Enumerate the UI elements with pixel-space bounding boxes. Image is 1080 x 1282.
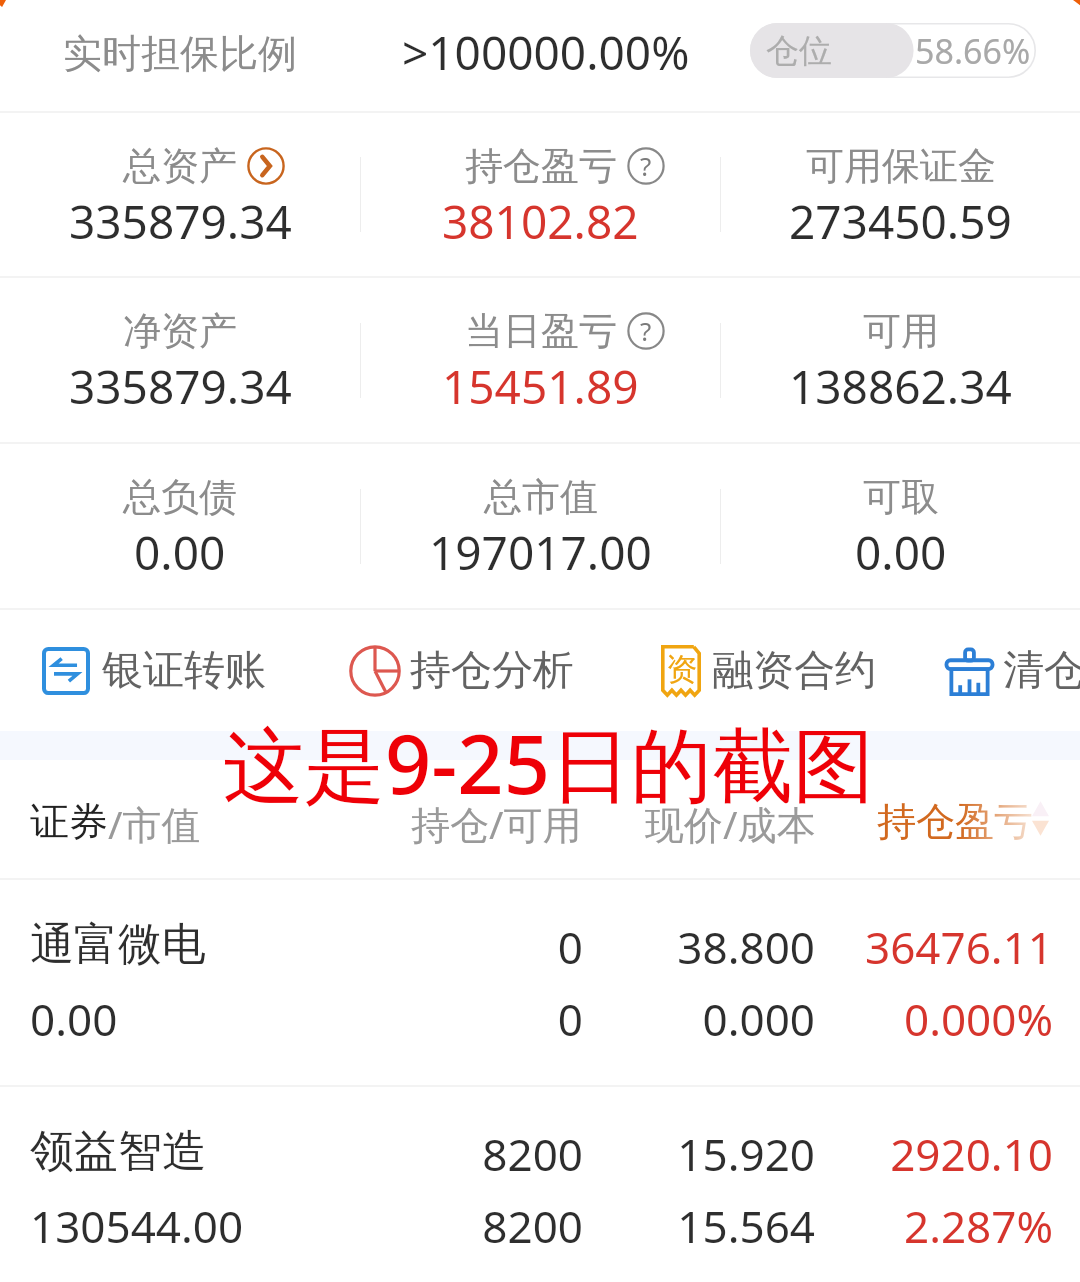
staticText: 335879.34: [69, 190, 292, 253]
staticText: 净资产: [123, 307, 237, 355]
staticText: 仓位: [766, 30, 832, 72]
staticText: 8200: [303, 1196, 583, 1256]
button[interactable]: 现价/成本: [645, 797, 816, 850]
staticText: 15.920: [595, 1124, 815, 1184]
staticText: 8200: [303, 1124, 583, 1184]
staticText: 2.287%: [828, 1196, 1053, 1256]
staticText: 持仓盈亏: [465, 142, 617, 190]
staticText: 0.00: [134, 521, 226, 584]
button[interactable]: 领益智造: [0, 1087, 1080, 1282]
staticText: 可用: [863, 307, 939, 355]
staticText: 通富微电: [30, 917, 206, 972]
staticText: 总负债: [123, 473, 237, 521]
staticText: 335879.34: [69, 355, 292, 418]
button[interactable]: 可用保证金: [721, 113, 1080, 276]
staticText: ?: [640, 148, 652, 183]
staticText: 资: [666, 650, 697, 689]
button[interactable]: 融资合约: [661, 645, 876, 697]
button[interactable]: 清仓: [945, 645, 1080, 697]
staticText: >100000.00%: [402, 21, 690, 84]
button[interactable]: 持仓分析: [349, 645, 574, 697]
button[interactable]: 总资产: [0, 113, 360, 276]
staticText: 58.66%: [915, 28, 1031, 74]
button[interactable]: 证券: [30, 797, 201, 850]
staticText: 36476.11: [828, 917, 1053, 977]
staticText: 130544.00: [30, 1196, 244, 1256]
button[interactable]: 总市值: [361, 444, 720, 608]
other: 总资产详情: [247, 147, 285, 185]
button[interactable]: 银证转账: [42, 645, 266, 697]
staticText: 实时担保比例: [63, 29, 297, 78]
staticText: 197017.00: [429, 521, 652, 584]
staticText: 273450.59: [789, 190, 1012, 253]
staticText: 38102.82: [442, 190, 639, 253]
button[interactable]: 仓位: [750, 23, 1036, 78]
other: 持仓分析: [349, 645, 401, 697]
button[interactable]: 净资产: [0, 278, 360, 442]
staticText: 0.000: [595, 989, 815, 1049]
staticText: 总市值: [484, 473, 598, 521]
staticText: 持仓分析: [410, 645, 574, 697]
staticText: 这是9-25日的截图: [223, 707, 874, 818]
staticText: 0: [303, 989, 583, 1049]
staticText: 38.800: [595, 917, 815, 977]
staticText: 15451.89: [442, 355, 639, 418]
staticText: 清仓: [1003, 645, 1080, 697]
button[interactable]: 持仓/可用: [411, 797, 582, 850]
staticText: ?: [640, 313, 652, 348]
staticText: 0.00: [855, 521, 947, 584]
staticText: 2920.10: [828, 1124, 1053, 1184]
staticText: /市值: [108, 797, 201, 850]
other: 融资合约: [661, 645, 701, 697]
staticText: 0: [303, 917, 583, 977]
button[interactable]: 总负债: [0, 444, 360, 608]
staticText: 138862.34: [789, 355, 1012, 418]
other: 说明: [627, 312, 665, 350]
button[interactable]: 持仓盈亏: [361, 113, 720, 276]
staticText: 可取: [863, 473, 939, 521]
staticText: 总资产: [123, 142, 237, 190]
other: 银证转账: [42, 647, 90, 695]
staticText: 当日盈亏: [465, 307, 617, 355]
other: 清仓: [945, 647, 994, 696]
staticText: 0.00: [30, 989, 118, 1049]
staticText: 可用保证金: [806, 142, 996, 190]
button[interactable]: 通富微电: [0, 880, 1080, 1085]
button[interactable]: 按持仓盈亏排序: [1032, 799, 1049, 838]
staticText: 银证转账: [102, 645, 266, 697]
staticText: 持仓盈亏: [877, 797, 1033, 846]
staticText: 证券: [30, 797, 108, 846]
button[interactable]: 可用: [721, 278, 1080, 442]
button[interactable]: 可取: [721, 444, 1080, 608]
other: 说明: [627, 147, 665, 185]
staticText: 融资合约: [712, 645, 876, 697]
staticText: 15.564: [595, 1196, 815, 1256]
button[interactable]: 当日盈亏: [361, 278, 720, 442]
staticText: 领益智造: [30, 1124, 206, 1179]
button[interactable]: 实时担保比例 >100000.00%: [0, 0, 1080, 111]
staticText: 0.000%: [828, 989, 1053, 1049]
